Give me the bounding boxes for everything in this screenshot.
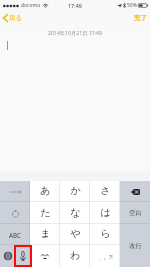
- button[interactable]: [30, 245, 60, 267]
- button[interactable]: あ: [30, 181, 60, 202]
- staticText: 、。?!: [98, 253, 113, 260]
- staticText: な: [70, 206, 81, 219]
- button[interactable]: や: [60, 224, 90, 245]
- staticText: か: [70, 184, 81, 197]
- button[interactable]: Next: [0, 181, 30, 202]
- staticText: や: [70, 227, 81, 240]
- button[interactable]: 、。?!: [90, 245, 120, 267]
- button[interactable]: 完了: [129, 12, 150, 24]
- button[interactable]: ABC: [0, 224, 30, 245]
- button[interactable]: Undo: [0, 202, 30, 224]
- button[interactable]: は: [90, 202, 120, 224]
- button[interactable]: Delete: [120, 181, 150, 202]
- staticText: は: [100, 206, 111, 219]
- button[interactable]: ま: [30, 224, 60, 245]
- staticText: ま: [40, 227, 51, 240]
- staticText: ら: [100, 227, 111, 240]
- staticText: 50%: [127, 2, 137, 9]
- button[interactable]: さ: [90, 181, 120, 202]
- button[interactable]: な: [60, 202, 90, 224]
- staticText: あ: [40, 184, 51, 197]
- button[interactable]: わ: [60, 245, 90, 267]
- staticText: 17:49: [68, 2, 82, 9]
- button[interactable]: 改行: [120, 224, 150, 267]
- staticText: 完了: [134, 14, 147, 22]
- staticText: ABC: [9, 231, 21, 239]
- staticText: た: [40, 206, 51, 219]
- button[interactable]: た: [30, 202, 60, 224]
- button[interactable]: Change keyboard: [0, 245, 15, 267]
- staticText: 改行: [129, 242, 142, 250]
- staticText: 空白: [129, 209, 142, 217]
- button[interactable]: 戻る: [0, 12, 27, 24]
- button[interactable]: Dictation: [15, 245, 30, 267]
- button[interactable]: か: [60, 181, 90, 202]
- staticText: 2014年10月21日 17:49: [48, 29, 102, 36]
- staticText: 戻る: [9, 14, 22, 22]
- staticText: さ: [100, 184, 111, 197]
- staticText: docomo: [21, 2, 41, 9]
- button[interactable]: ら: [90, 224, 120, 245]
- button[interactable]: 空白: [120, 202, 150, 224]
- staticText: わ: [70, 249, 81, 262]
